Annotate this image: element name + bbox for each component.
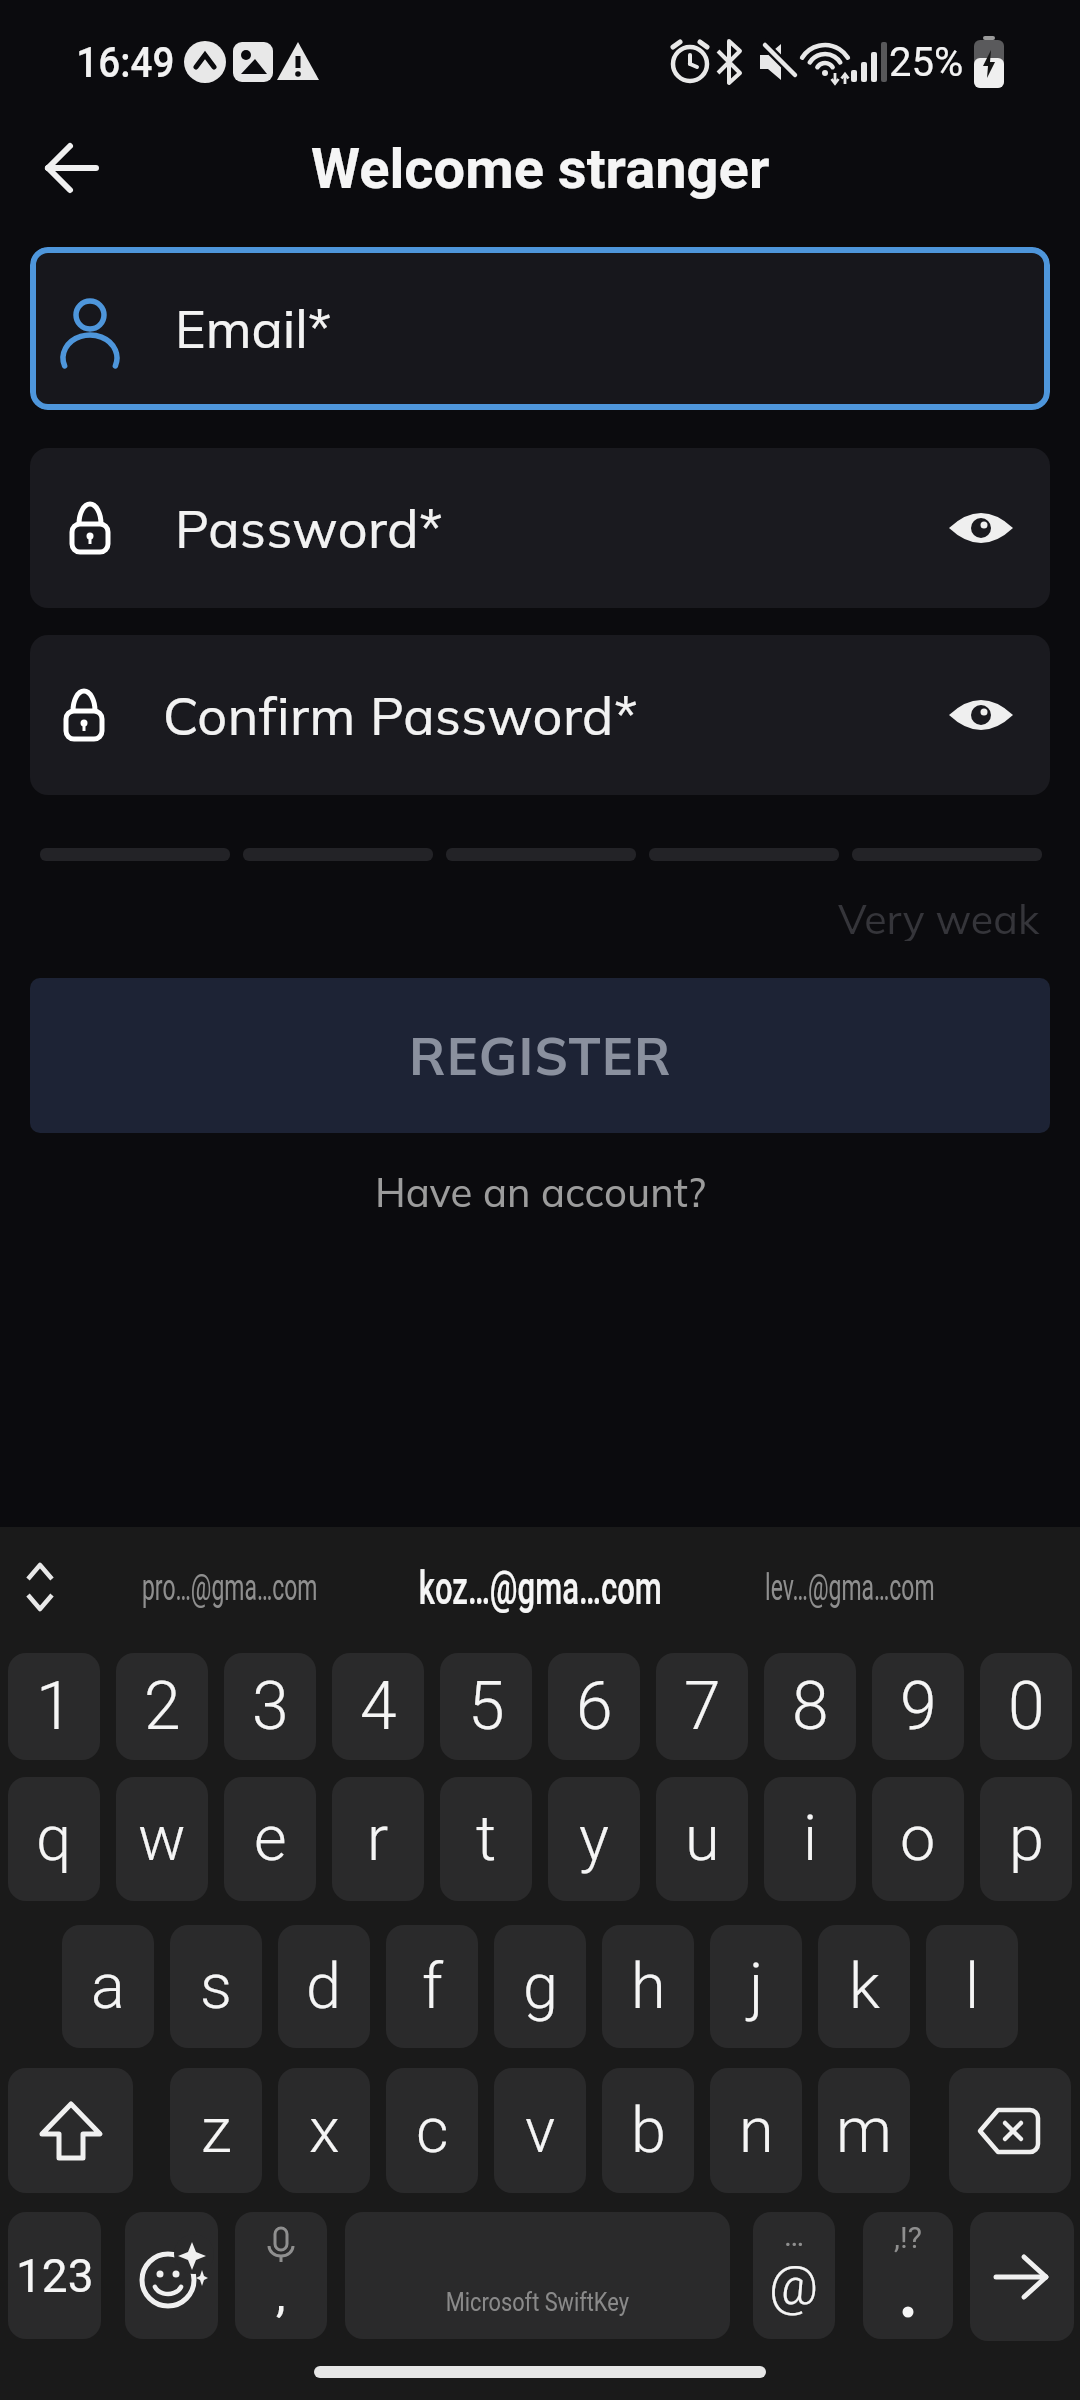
staticText: n [739,2094,774,2168]
button[interactable]: 9 [872,1653,964,1760]
button[interactable] [949,2068,1071,2193]
staticText: 0 [1008,1668,1045,1745]
staticText: z [201,2094,232,2168]
staticText: Confirm Password* [163,683,639,748]
staticText: pro…@gma…com [142,1566,318,1609]
staticText: REGISTER [409,1023,672,1088]
button[interactable]: 3 [224,1653,316,1760]
staticText: h [631,1950,666,2024]
staticText: 123 [16,2249,94,2303]
button[interactable] [970,2212,1074,2341]
button[interactable]: 6 [548,1653,640,1760]
button[interactable]: u [656,1777,748,1901]
staticText: Email* [175,296,332,361]
staticText: w [138,1802,186,1876]
button[interactable] [8,2068,133,2193]
button[interactable]: w [116,1777,208,1901]
staticText: m [836,2094,892,2168]
button[interactable]: Confirm Password* [30,635,1050,795]
button[interactable]: koz…@gma…com [330,1550,750,1624]
button[interactable]: Email* [30,247,1050,410]
staticText: g [523,1950,558,2024]
button[interactable]: Password* [30,448,1050,608]
button[interactable] [10,1555,70,1619]
button[interactable]: t [440,1777,532,1901]
button[interactable]: 2 [116,1653,208,1760]
staticText: @ [769,2254,819,2317]
button[interactable]: 4 [332,1653,424,1760]
button[interactable]: f [386,1925,478,2048]
button[interactable]: lev…@gma…com [700,1555,1000,1619]
staticText: 3 [252,1668,289,1745]
button[interactable]: v [494,2068,586,2193]
button[interactable]: e [224,1777,316,1901]
button[interactable]: 1 [8,1653,100,1760]
button[interactable]: 0 [980,1653,1072,1760]
staticText: koz…@gma…com [419,1560,662,1615]
staticText: 25% [889,39,964,86]
staticText: i [803,1802,818,1876]
staticText: o [900,1802,936,1876]
staticText: 16:49 [76,38,175,87]
staticText: 7 [684,1668,721,1745]
staticText: r [367,1802,389,1876]
button[interactable]: p [980,1777,1072,1901]
button[interactable]: k [818,1925,910,2048]
staticText: y [579,1802,609,1876]
button[interactable]: 7 [656,1653,748,1760]
button[interactable]: x [278,2068,370,2193]
staticText: 4 [360,1668,397,1745]
button[interactable]: h [602,1925,694,2048]
button[interactable]: y [548,1777,640,1901]
button[interactable]: 5 [440,1653,532,1760]
staticText: Welcome stranger [311,136,770,202]
button[interactable]: n [710,2068,802,2193]
staticText: 5 [468,1668,505,1745]
button[interactable]: g [494,1925,586,2048]
button[interactable]: pro…@gma…com [80,1555,380,1619]
button[interactable]: d [278,1925,370,2048]
button[interactable] [36,132,108,204]
button[interactable] [125,2212,218,2339]
button[interactable]: b [602,2068,694,2193]
staticText: d [306,1950,342,2024]
button[interactable]: … [753,2212,835,2339]
staticText: Have an account? [375,1167,706,1217]
staticText: x [309,2094,340,2168]
staticText: l [965,1950,980,2024]
staticText: t [476,1802,497,1876]
staticText: q [36,1802,72,1876]
button[interactable]: 8 [764,1653,856,1760]
button[interactable]: j [710,1925,802,2048]
staticText: u [685,1802,720,1876]
staticText: 9 [900,1668,937,1745]
button[interactable]: 123 [8,2212,101,2339]
staticText: p [1009,1802,1044,1876]
staticText: s [200,1950,232,2024]
staticText: a [91,1950,125,2024]
button[interactable]: REGISTER [30,978,1050,1133]
staticText: , [276,2266,286,2322]
staticText: 2 [144,1668,181,1745]
staticText: Very weak [838,893,1040,941]
staticText: b [631,2094,666,2168]
button[interactable]: r [332,1777,424,1901]
button[interactable]: z [170,2068,262,2193]
button[interactable]: q [8,1777,100,1901]
button[interactable]: l [926,1925,1018,2048]
button[interactable]: , [235,2212,327,2339]
staticText: Password* [175,496,444,561]
button[interactable]: Have an account? [340,1160,740,1224]
staticText: v [525,2094,556,2168]
staticText: 6 [576,1668,613,1745]
button[interactable]: i [764,1777,856,1901]
button[interactable]: a [62,1925,154,2048]
staticText: … [784,2218,805,2253]
button[interactable]: Microsoft SwiftKey [345,2212,730,2339]
button[interactable]: o [872,1777,964,1901]
button[interactable]: c [386,2068,478,2193]
button[interactable]: m [818,2068,910,2193]
button[interactable]: ,!? [863,2212,953,2339]
staticText: c [416,2094,449,2168]
button[interactable]: s [170,1925,262,2048]
